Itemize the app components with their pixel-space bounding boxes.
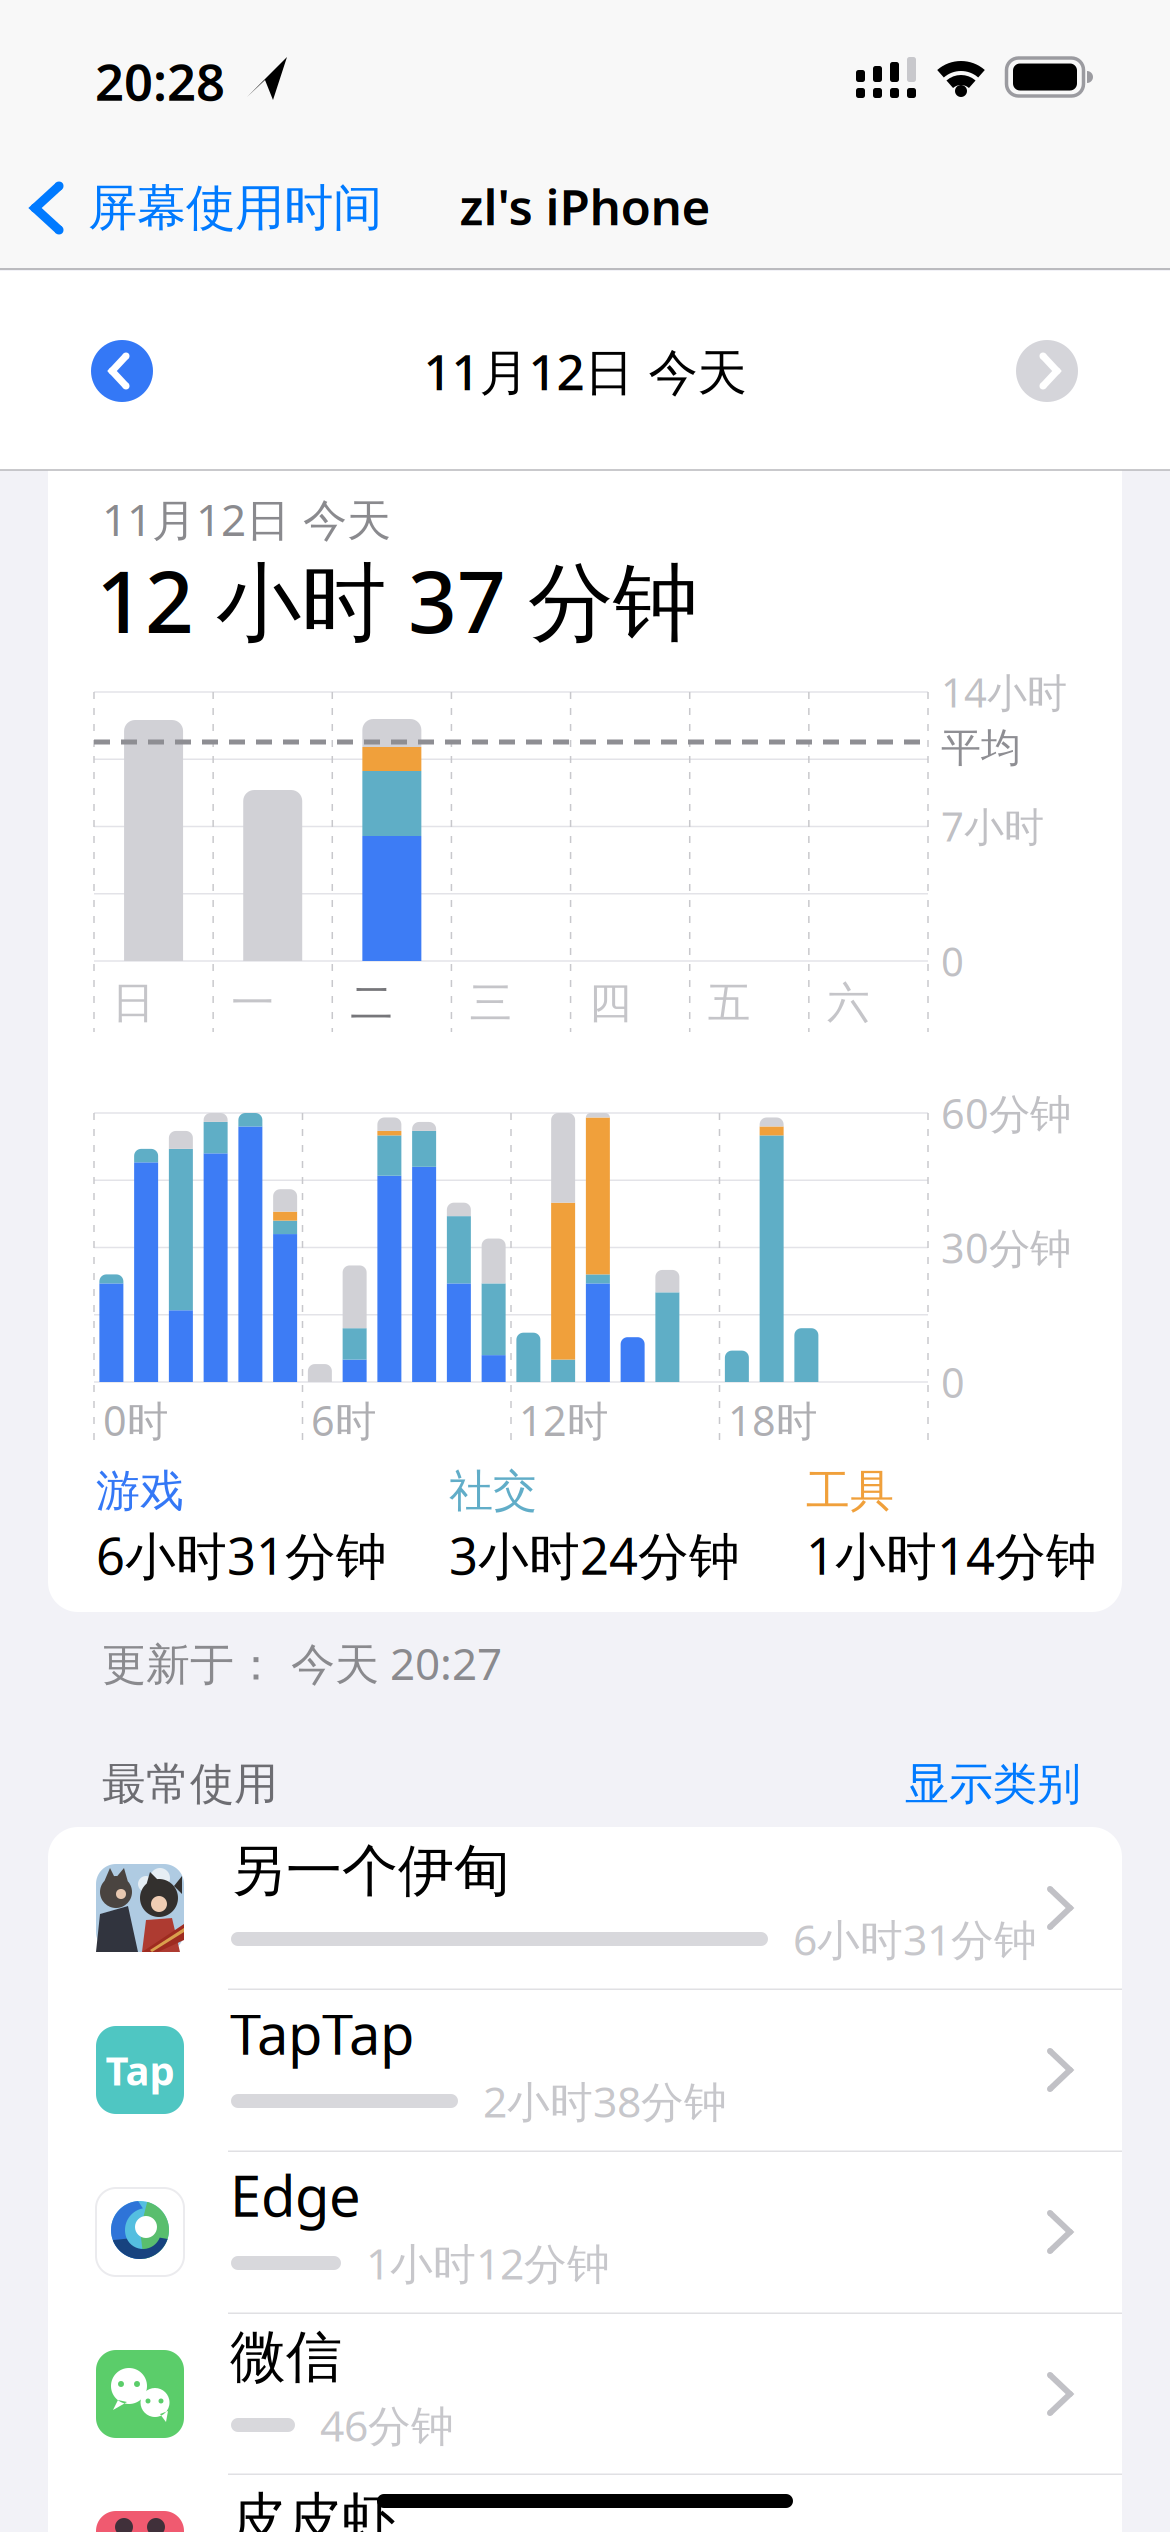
staticText: 30分钟 xyxy=(941,1220,1071,1275)
staticText: 60分钟 xyxy=(941,1086,1071,1140)
staticText: 12 小时 37 分钟 xyxy=(96,543,698,657)
staticText: 20:28 xyxy=(95,47,225,115)
button[interactable] xyxy=(1007,331,1087,411)
staticText: zl's iPhone xyxy=(459,173,710,239)
staticText: 18时 xyxy=(728,1393,817,1447)
staticText: 1小时12分钟 xyxy=(366,2235,610,2291)
staticText: 3小时24分钟 xyxy=(449,1521,740,1589)
staticText: 6小时31分钟 xyxy=(96,1521,387,1589)
staticText: 14小时 xyxy=(941,665,1067,718)
staticText: 社交 xyxy=(449,1464,537,1518)
staticText: 屏幕使用时间 xyxy=(88,178,382,238)
staticText: 微信 xyxy=(230,2323,342,2391)
staticText: TapTap xyxy=(230,1996,414,2070)
button[interactable]: Edge xyxy=(48,2151,1122,2313)
staticText: 11月12日 今天 xyxy=(423,338,746,404)
staticText: 0 xyxy=(941,934,964,987)
staticText: 工具 xyxy=(806,1464,894,1518)
staticText: 2小时38分钟 xyxy=(483,2073,727,2129)
staticText: 四 xyxy=(589,977,632,1029)
staticText: 0 xyxy=(941,1355,965,1409)
staticText: 三 xyxy=(469,977,512,1029)
staticText: 五 xyxy=(708,977,751,1029)
staticText: 显示类别 xyxy=(905,1757,1081,1811)
button[interactable] xyxy=(82,331,162,411)
staticText: 二 xyxy=(350,977,393,1029)
button[interactable]: Tap xyxy=(48,1989,1122,2151)
staticText: 皮皮虾 xyxy=(230,2485,398,2532)
staticText: 一 xyxy=(231,977,274,1029)
staticText: 12时 xyxy=(519,1393,608,1447)
staticText: 游戏 xyxy=(96,1464,184,1518)
button[interactable]: 屏幕使用时间 xyxy=(14,153,434,263)
button[interactable]: 显示类别 xyxy=(883,1744,1103,1824)
staticText: Tap xyxy=(105,2043,174,2096)
staticText: 11月12日 今天 xyxy=(102,490,391,548)
staticText: 6小时31分钟 xyxy=(793,1911,1037,1967)
staticText: 平均 xyxy=(941,723,1021,772)
button[interactable]: 皮皮虾 xyxy=(48,2474,1122,2532)
staticText: 六 xyxy=(827,977,870,1029)
staticText: 另一个伊甸 xyxy=(230,1837,510,1905)
staticText: 更新于： 今天 20:27 xyxy=(102,1634,502,1692)
button[interactable]: 微信 xyxy=(48,2313,1122,2475)
staticText: 0时 xyxy=(103,1393,168,1447)
staticText: 6时 xyxy=(311,1393,376,1447)
staticText: Edge xyxy=(230,2158,361,2232)
staticText: 日 xyxy=(112,977,155,1029)
staticText: 46分钟 xyxy=(320,2397,454,2453)
staticText: 7小时 xyxy=(941,799,1044,852)
staticText: 最常使用 xyxy=(102,1757,278,1811)
staticText: 1小时14分钟 xyxy=(806,1521,1097,1589)
button[interactable]: 另一个伊甸 xyxy=(48,1827,1122,1989)
